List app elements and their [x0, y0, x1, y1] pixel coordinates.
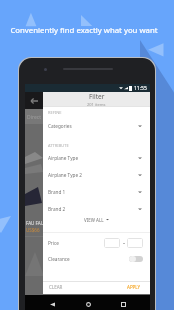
- button[interactable]: Brand 2: [43, 203, 150, 215]
- staticText: Conveniently find exactly what you want: [0, 25, 171, 36]
- staticText: REFINE: [48, 110, 62, 115]
- button[interactable]: CLEAR: [49, 284, 63, 290]
- staticText: Airplane Type 2: [48, 172, 82, 178]
- button[interactable]: Clearance: [43, 252, 150, 266]
- staticText: Direct: [27, 114, 41, 121]
- button[interactable]: Minimum price: [104, 238, 120, 248]
- button[interactable]: Brand 1: [43, 186, 150, 198]
- button[interactable]: APPLY: [127, 284, 141, 290]
- staticText: Airplane Type: [48, 155, 79, 161]
- button[interactable]: Airplane Type 2: [43, 169, 150, 181]
- staticText: Categories: [48, 123, 72, 129]
- button[interactable]: Maximum price: [127, 238, 143, 248]
- button[interactable]: Home: [80, 296, 96, 310]
- staticText: US$66: [26, 227, 40, 233]
- staticText: CLEAR: [49, 284, 63, 290]
- staticText: 201 items: [87, 102, 106, 107]
- button[interactable]: Airplane Type: [43, 152, 150, 164]
- staticText: 11:55: [134, 85, 147, 92]
- staticText: ATTRIBUTE: [48, 143, 69, 148]
- button[interactable]: Recent apps: [115, 296, 131, 310]
- staticText: FAU FAU: [26, 220, 44, 226]
- staticText: VIEW ALL: [84, 217, 104, 223]
- staticText: Brand 2: [48, 206, 66, 212]
- button[interactable]: VIEW ALL: [43, 214, 150, 225]
- staticText: Filter: [89, 92, 105, 101]
- button[interactable]: Back: [44, 296, 60, 310]
- button[interactable]: Categories: [43, 120, 150, 132]
- staticText: Brand 1: [48, 189, 66, 195]
- staticText: APPLY: [127, 284, 141, 290]
- button[interactable]: Navigate up: [26, 92, 42, 109]
- staticText: Clearance: [48, 256, 70, 262]
- staticText: Price: [48, 240, 59, 246]
